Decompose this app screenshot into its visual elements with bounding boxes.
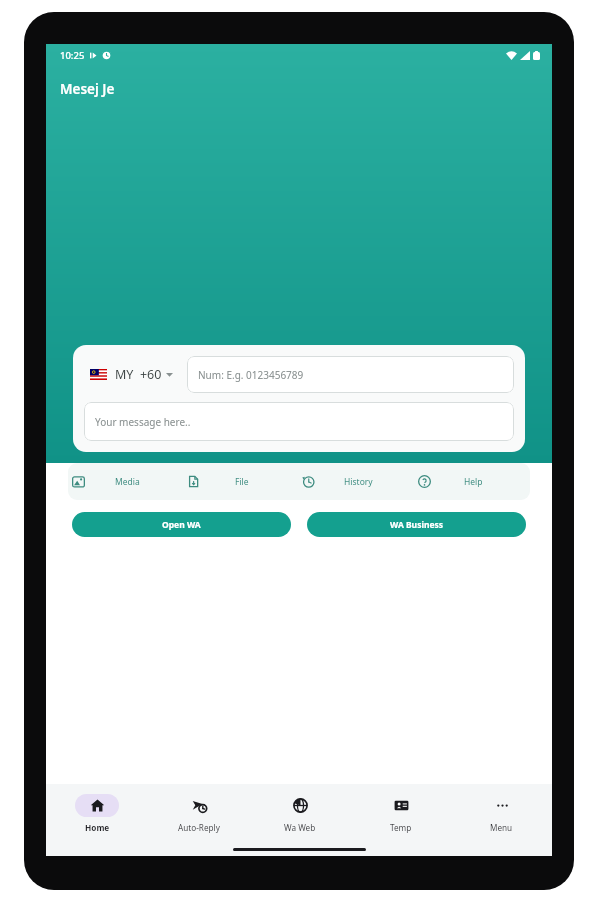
button[interactable]: Your message here.. [84, 402, 514, 441]
staticText: WA Business [390, 519, 444, 531]
staticText: Media [115, 476, 140, 488]
staticText: Wa Web [284, 822, 316, 833]
button[interactable]: Home [46, 784, 148, 842]
staticText: Your message here.. [95, 415, 191, 429]
button[interactable]: Help [414, 463, 530, 500]
button[interactable]: Open WA [72, 512, 291, 537]
button[interactable]: WA Business [307, 512, 526, 537]
staticText: File [235, 476, 249, 488]
button[interactable]: File [183, 463, 298, 500]
staticText: Home [85, 822, 110, 833]
button[interactable]: Wa Web [249, 784, 350, 842]
staticText: MY +60 [115, 366, 162, 383]
button[interactable]: Media [68, 463, 183, 500]
button[interactable]: Temp [350, 784, 451, 842]
button[interactable]: Menu [451, 784, 552, 842]
button[interactable]: History [298, 463, 414, 500]
button[interactable]: Auto-Reply [148, 784, 249, 842]
button[interactable]: Num: E.g. 0123456789 [187, 356, 514, 393]
staticText: Menu [490, 822, 513, 833]
staticText: Open WA [162, 519, 201, 531]
staticText: Num: E.g. 0123456789 [198, 368, 304, 382]
button[interactable]: MY +60 [84, 360, 179, 389]
staticText: Help [464, 476, 483, 488]
staticText: 10:25 [60, 49, 85, 62]
staticText: History [344, 476, 373, 488]
staticText: Mesej Je [60, 80, 115, 98]
staticText: Temp [390, 822, 412, 833]
staticText: Auto-Reply [178, 822, 220, 833]
